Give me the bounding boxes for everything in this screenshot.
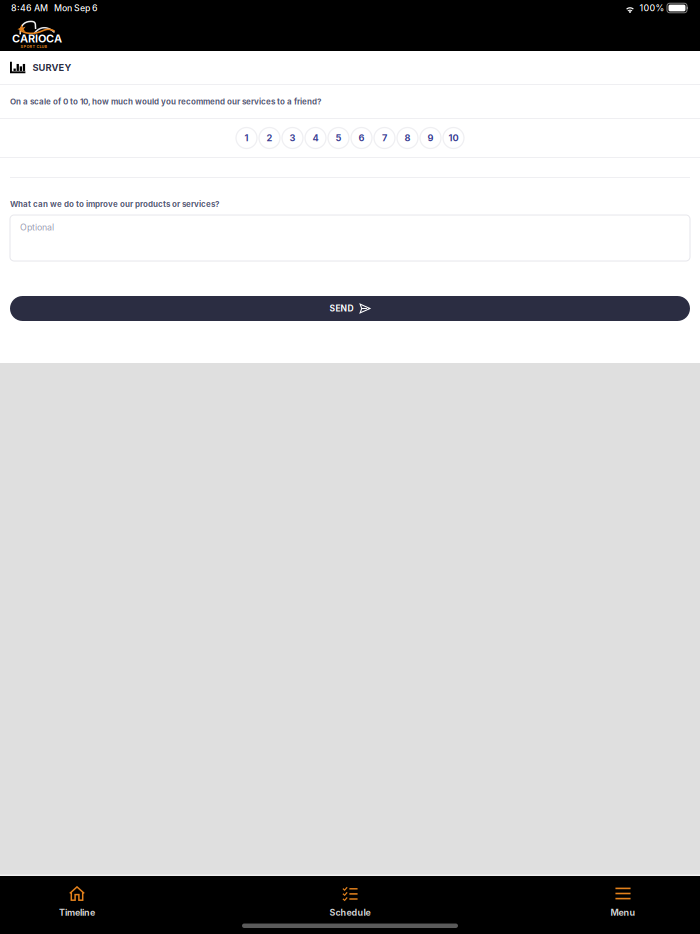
staticText: 8	[404, 132, 410, 143]
button[interactable]: 1	[236, 127, 257, 148]
staticText: 9	[427, 132, 433, 143]
button[interactable]: 2	[259, 127, 280, 148]
staticText: On a scale of 0 to 10, how much would yo…	[10, 97, 321, 106]
staticText: Timeline	[59, 907, 95, 918]
button[interactable]: Timeline	[22, 876, 132, 923]
button[interactable]: Menu	[568, 876, 678, 923]
staticText: What can we do to improve our products o…	[10, 199, 219, 209]
staticText: 7	[382, 132, 387, 143]
staticText: 6	[358, 132, 364, 143]
staticText: Schedule	[329, 907, 370, 918]
button[interactable]: 8	[397, 127, 418, 148]
staticText: 1	[244, 132, 248, 143]
staticText: 10	[448, 132, 458, 143]
staticText: 2	[266, 132, 272, 143]
staticText: 4	[312, 132, 318, 143]
staticText: Optional	[20, 222, 54, 233]
staticText: 100%	[639, 3, 664, 13]
staticText: Mon Sep 6	[54, 3, 98, 13]
staticText: SURVEY	[32, 62, 71, 73]
staticText: CARIOCA	[12, 32, 62, 45]
staticText: 8:46 AM	[11, 3, 48, 13]
button[interactable]: 4	[305, 127, 326, 148]
button[interactable]: 3	[282, 127, 303, 148]
button[interactable]: 10	[443, 127, 464, 148]
staticText: Menu	[610, 907, 635, 918]
staticText: SEND	[329, 303, 353, 314]
button[interactable]: 9	[420, 127, 441, 148]
button[interactable]: SEND	[0, 296, 700, 321]
staticText: 3	[289, 132, 295, 143]
button[interactable]: Schedule	[295, 876, 405, 923]
staticText: 5	[335, 132, 341, 143]
button[interactable]: 7	[374, 127, 395, 148]
button[interactable]: 5	[328, 127, 349, 148]
button[interactable]: 6	[351, 127, 372, 148]
staticText: SPORT CLUB	[20, 44, 47, 49]
